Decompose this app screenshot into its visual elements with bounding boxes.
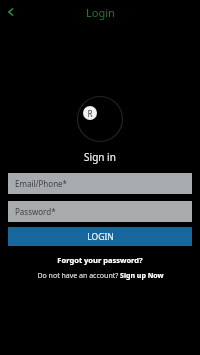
button[interactable]: LOGIN bbox=[8, 227, 192, 246]
staticText: Forgot your password? bbox=[57, 255, 143, 265]
staticText: Sign in bbox=[84, 150, 116, 164]
button[interactable]: Email/Phone* bbox=[8, 173, 192, 194]
staticText: Do not have an account? Sign up Now bbox=[37, 271, 164, 281]
staticText: Password* bbox=[15, 206, 56, 217]
staticText: Email/Phone* bbox=[15, 178, 68, 189]
staticText: R bbox=[87, 108, 93, 119]
staticText: LOGIN bbox=[87, 231, 114, 243]
button[interactable]: Forgot your password? bbox=[0, 255, 200, 265]
button[interactable]: Back bbox=[0, 1, 22, 23]
button[interactable]: Password* bbox=[8, 201, 192, 222]
staticText: Login bbox=[86, 5, 115, 20]
button[interactable]: Do not have an account? Sign up Now bbox=[0, 271, 200, 281]
